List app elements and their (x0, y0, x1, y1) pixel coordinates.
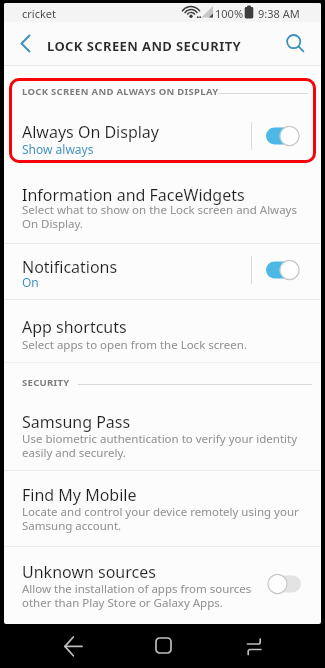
staticText: Use biometric authentication to verify y… (22, 431, 298, 460)
button[interactable]: Find My Mobile (4, 470, 321, 546)
staticText: Unknown sources (22, 561, 156, 583)
staticText: Locate and control your device remotely … (22, 504, 299, 533)
button[interactable] (152, 635, 174, 657)
staticText: Show always (22, 141, 94, 157)
staticText: App shortcuts (22, 316, 127, 338)
staticText: Find My Mobile (22, 484, 137, 506)
staticText: LOCK SCREEN AND SECURITY (47, 37, 242, 55)
staticText: Allow the installation of apps from sour… (22, 581, 252, 610)
button[interactable]: Information and FaceWidgets (4, 166, 321, 243)
button[interactable] (268, 572, 308, 596)
staticText: Information and FaceWidgets (22, 184, 245, 206)
staticText: cricket (22, 6, 56, 21)
staticText: LOCK SCREEN AND ALWAYS ON DISPLAY (22, 85, 219, 98)
button[interactable]: App shortcuts (4, 299, 321, 362)
button[interactable] (266, 258, 306, 282)
button[interactable] (266, 124, 306, 148)
button[interactable] (282, 30, 310, 58)
staticText: On (22, 274, 39, 290)
button[interactable]: Notifications (4, 243, 321, 299)
button[interactable]: Unknown sources (4, 546, 321, 624)
staticText: SECURITY (22, 376, 70, 389)
button[interactable]: Samsung Pass (4, 393, 321, 470)
staticText: Select what to show on the Lock screen a… (22, 202, 297, 231)
staticText: 9:38 AM (258, 6, 300, 21)
button[interactable] (57, 633, 83, 659)
staticText: Select apps to open from the Lock screen… (22, 337, 247, 353)
button[interactable] (14, 32, 38, 56)
staticText: Notifications (22, 256, 118, 278)
staticText: 100% (215, 6, 244, 21)
button[interactable]: Always On Display (4, 105, 321, 163)
staticText: Samsung Pass (22, 411, 131, 433)
staticText: Always On Display (22, 121, 160, 143)
button[interactable] (244, 635, 266, 657)
